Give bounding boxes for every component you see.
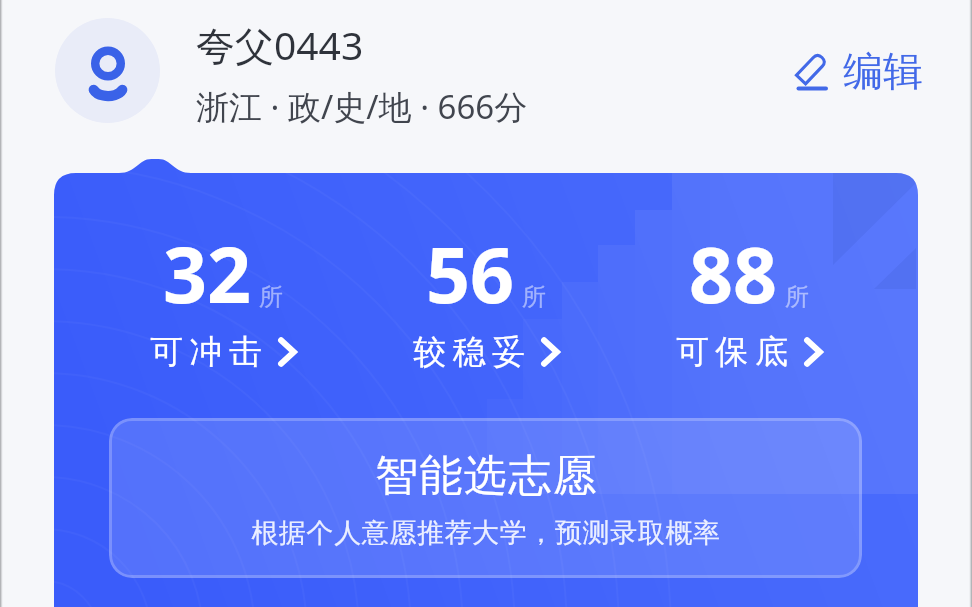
button[interactable]: 56 [354, 221, 617, 373]
staticText: 所 [785, 282, 809, 312]
staticText: 56 [426, 221, 515, 326]
staticText: 可保底 [676, 331, 795, 373]
staticText: 所 [259, 282, 283, 312]
button[interactable]: Profile avatar [55, 18, 160, 123]
button[interactable]: 编辑 [792, 46, 923, 96]
button[interactable]: 32 [92, 221, 354, 373]
staticText: 浙江 · 政/史/地 · 666分 [196, 84, 528, 129]
staticText: 编辑 [843, 46, 923, 96]
button[interactable]: 智能选志愿 [109, 418, 862, 578]
staticText: 较稳妥 [413, 331, 532, 373]
staticText: 智能选志愿 [374, 449, 597, 503]
staticText: 32 [163, 221, 252, 326]
staticText: 可冲击 [150, 331, 269, 373]
staticText: 88 [689, 221, 778, 326]
staticText: 夸父0443 [196, 18, 364, 71]
button[interactable]: 88 [617, 221, 880, 373]
staticText: 所 [522, 282, 546, 312]
staticText: 根据个人意愿推荐大学，预测录取概率 [251, 516, 721, 550]
